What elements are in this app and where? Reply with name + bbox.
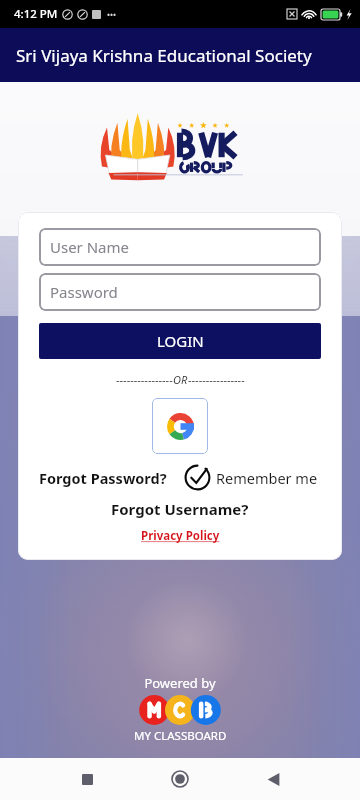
button[interactable]: Recent apps xyxy=(72,764,102,794)
staticText: Forgot Username? xyxy=(111,499,249,519)
staticText: ---------------- xyxy=(116,372,173,387)
staticText: OR xyxy=(173,372,188,387)
button[interactable]: Password xyxy=(39,273,321,311)
staticText: ••• xyxy=(107,9,117,20)
button[interactable]: Forgot Username? xyxy=(111,499,249,519)
staticText: Forgot Password? xyxy=(39,468,167,488)
staticText: LOGIN xyxy=(157,331,204,351)
button[interactable]: Privacy Policy xyxy=(141,528,220,544)
staticText: MY CLASSBOARD xyxy=(134,728,227,744)
button[interactable]: Sign in with Google xyxy=(152,398,208,454)
staticText: Password xyxy=(50,282,118,302)
button[interactable]: Forgot Password? xyxy=(39,468,167,488)
staticText: User Name xyxy=(50,237,130,257)
button[interactable]: LOGIN xyxy=(39,323,321,359)
button[interactable]: Remember me xyxy=(184,464,318,491)
staticText: ---------------- xyxy=(188,372,245,387)
staticText: Remember me xyxy=(216,468,318,488)
button[interactable]: Home xyxy=(165,764,195,794)
staticText: Sri Vijaya Krishna Educational Society xyxy=(16,44,312,67)
button[interactable]: User Name xyxy=(39,228,321,266)
staticText: Privacy Policy xyxy=(141,528,220,544)
staticText: 4:12 PM xyxy=(14,6,58,22)
staticText: Powered by xyxy=(144,674,216,692)
button[interactable]: Back xyxy=(258,764,288,794)
